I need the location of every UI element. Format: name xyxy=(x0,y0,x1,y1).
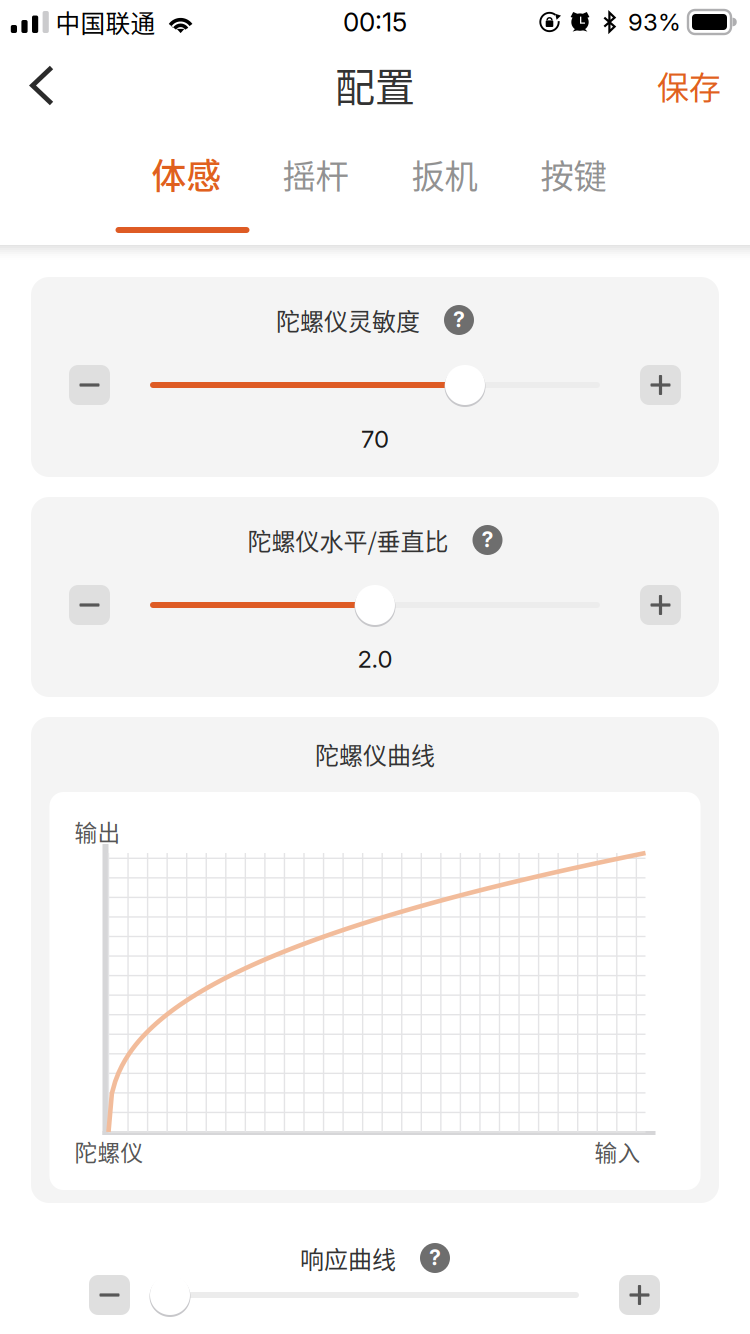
button[interactable]: Increase xyxy=(619,1275,660,1315)
staticText: 保存 xyxy=(657,62,721,109)
button[interactable]: 体感 xyxy=(122,127,251,245)
button[interactable]: Help xyxy=(472,525,502,555)
staticText: 摇杆 xyxy=(282,150,348,198)
staticText: 00:15 xyxy=(343,6,407,38)
staticText: ? xyxy=(453,307,465,332)
staticText: 2.0 xyxy=(357,644,392,673)
staticText: 陀螺仪灵敏度 xyxy=(276,303,420,337)
staticText: 陀螺仪曲线 xyxy=(315,737,435,771)
button[interactable]: Decrease xyxy=(69,365,110,405)
button[interactable]: Help xyxy=(444,305,474,335)
staticText: 扳机 xyxy=(411,150,477,198)
button[interactable]: Decrease xyxy=(89,1275,130,1315)
staticText: 93% xyxy=(628,7,681,36)
button[interactable]: Increase xyxy=(640,365,681,405)
button[interactable]: 保存 xyxy=(620,44,750,127)
button[interactable]: 按键 xyxy=(509,127,638,245)
button[interactable]: 摇杆 xyxy=(251,127,380,245)
staticText: ? xyxy=(429,1245,441,1270)
button[interactable]: Increase xyxy=(640,585,681,625)
staticText: ? xyxy=(481,527,493,552)
staticText: 响应曲线 xyxy=(300,1241,396,1275)
staticText: 配置 xyxy=(335,55,415,113)
staticText: 输入 xyxy=(594,1135,640,1168)
button[interactable]: Back xyxy=(0,44,96,127)
staticText: 陀螺仪 xyxy=(74,1135,143,1168)
staticText: 输出 xyxy=(74,815,120,848)
staticText: 体感 xyxy=(151,149,221,199)
staticText: 按键 xyxy=(540,150,606,198)
button[interactable]: Decrease xyxy=(69,585,110,625)
button[interactable]: Help xyxy=(420,1243,450,1273)
staticText: 陀螺仪水平/垂直比 xyxy=(247,523,448,557)
button[interactable]: 扳机 xyxy=(380,127,509,245)
staticText: 中国联通 xyxy=(56,4,156,40)
staticText: 70 xyxy=(361,424,389,453)
